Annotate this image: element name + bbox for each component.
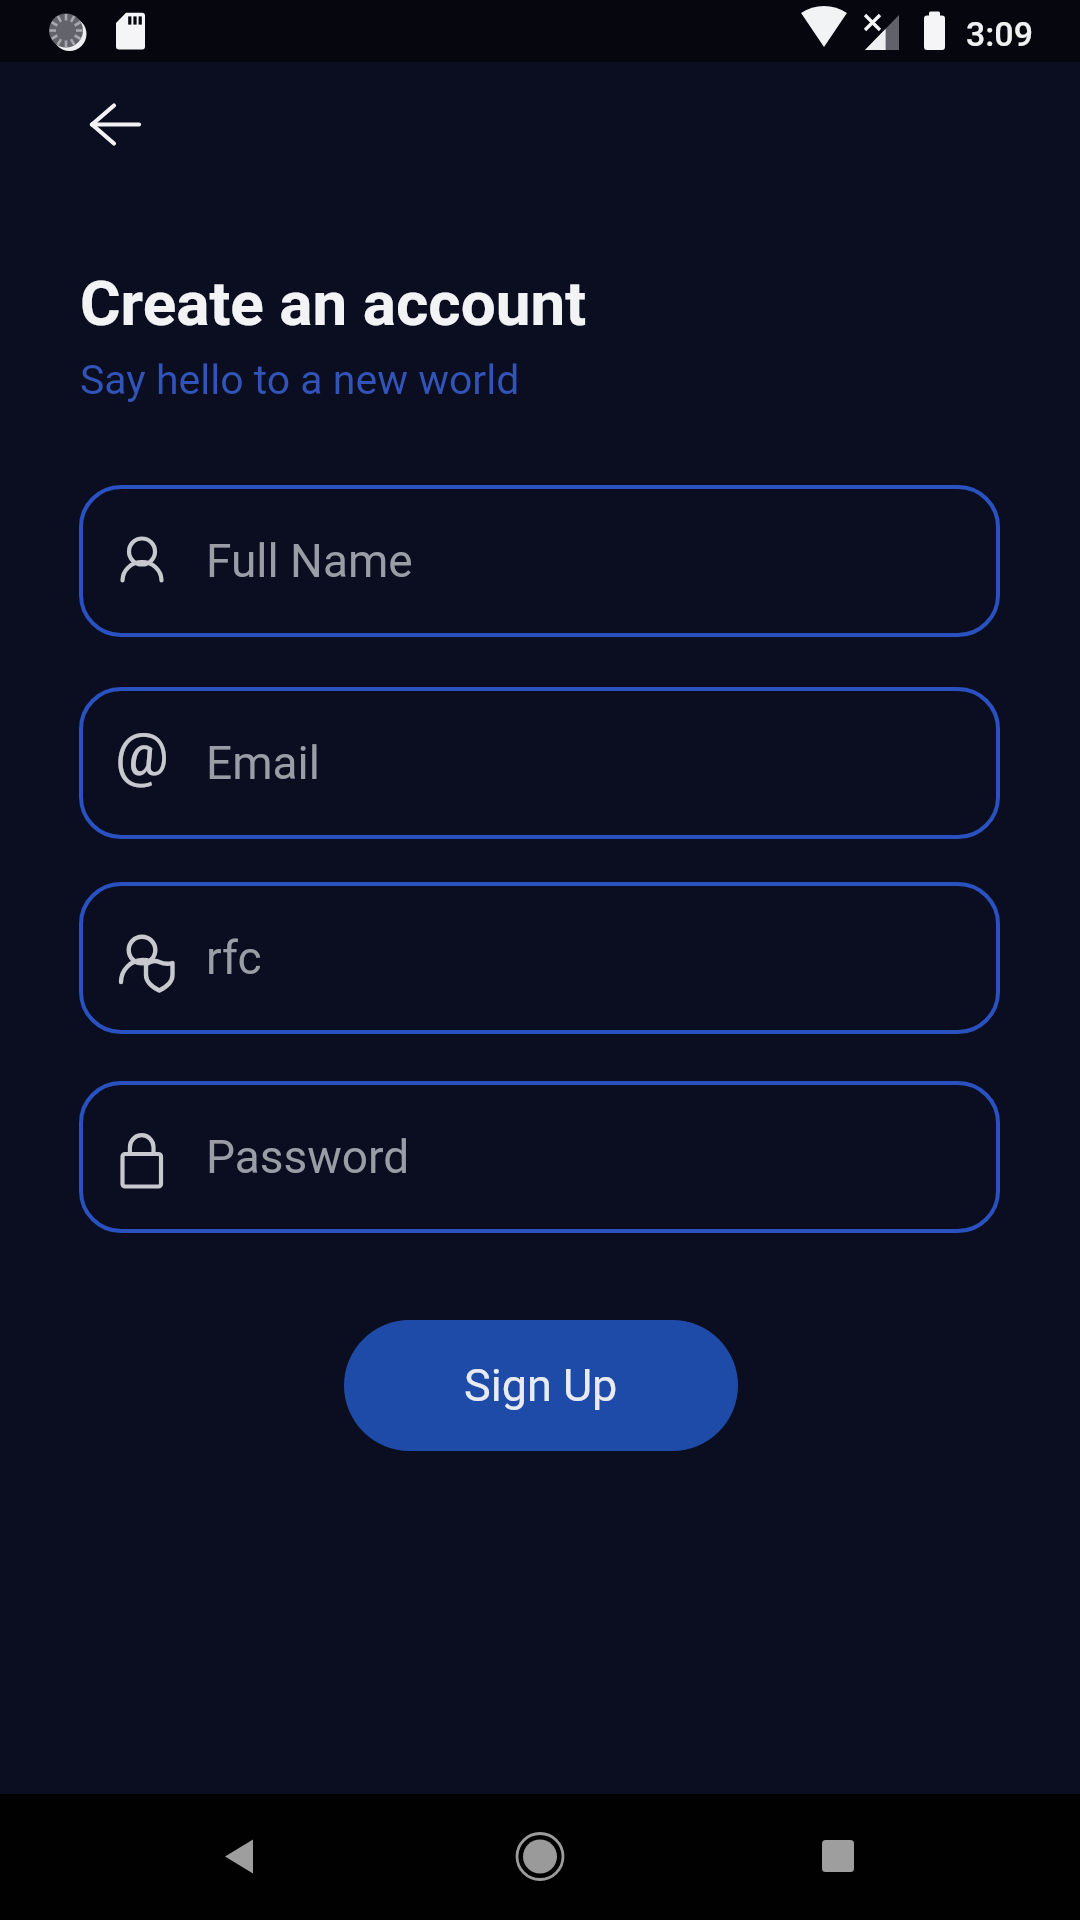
staticText: Email <box>206 736 320 790</box>
button[interactable] <box>512 1829 568 1885</box>
button[interactable]: rfc <box>79 882 1000 1034</box>
button[interactable]: Full Name <box>79 485 1000 637</box>
staticText: Sign Up <box>464 1359 618 1412</box>
staticText: Say hello to a new world <box>80 356 520 404</box>
button[interactable]: Sign Up <box>344 1320 738 1451</box>
button[interactable] <box>86 98 142 154</box>
staticText: Full Name <box>206 534 413 588</box>
button[interactable]: @ <box>79 687 1000 839</box>
button[interactable] <box>213 1830 269 1886</box>
staticText: @ <box>115 719 169 789</box>
staticText: Create an account <box>80 267 587 340</box>
staticText: rfc <box>206 931 262 985</box>
staticText: Password <box>206 1130 410 1184</box>
button[interactable] <box>810 1828 866 1884</box>
button[interactable]: Password <box>79 1081 1000 1233</box>
staticText: 3:09 <box>966 14 1033 54</box>
